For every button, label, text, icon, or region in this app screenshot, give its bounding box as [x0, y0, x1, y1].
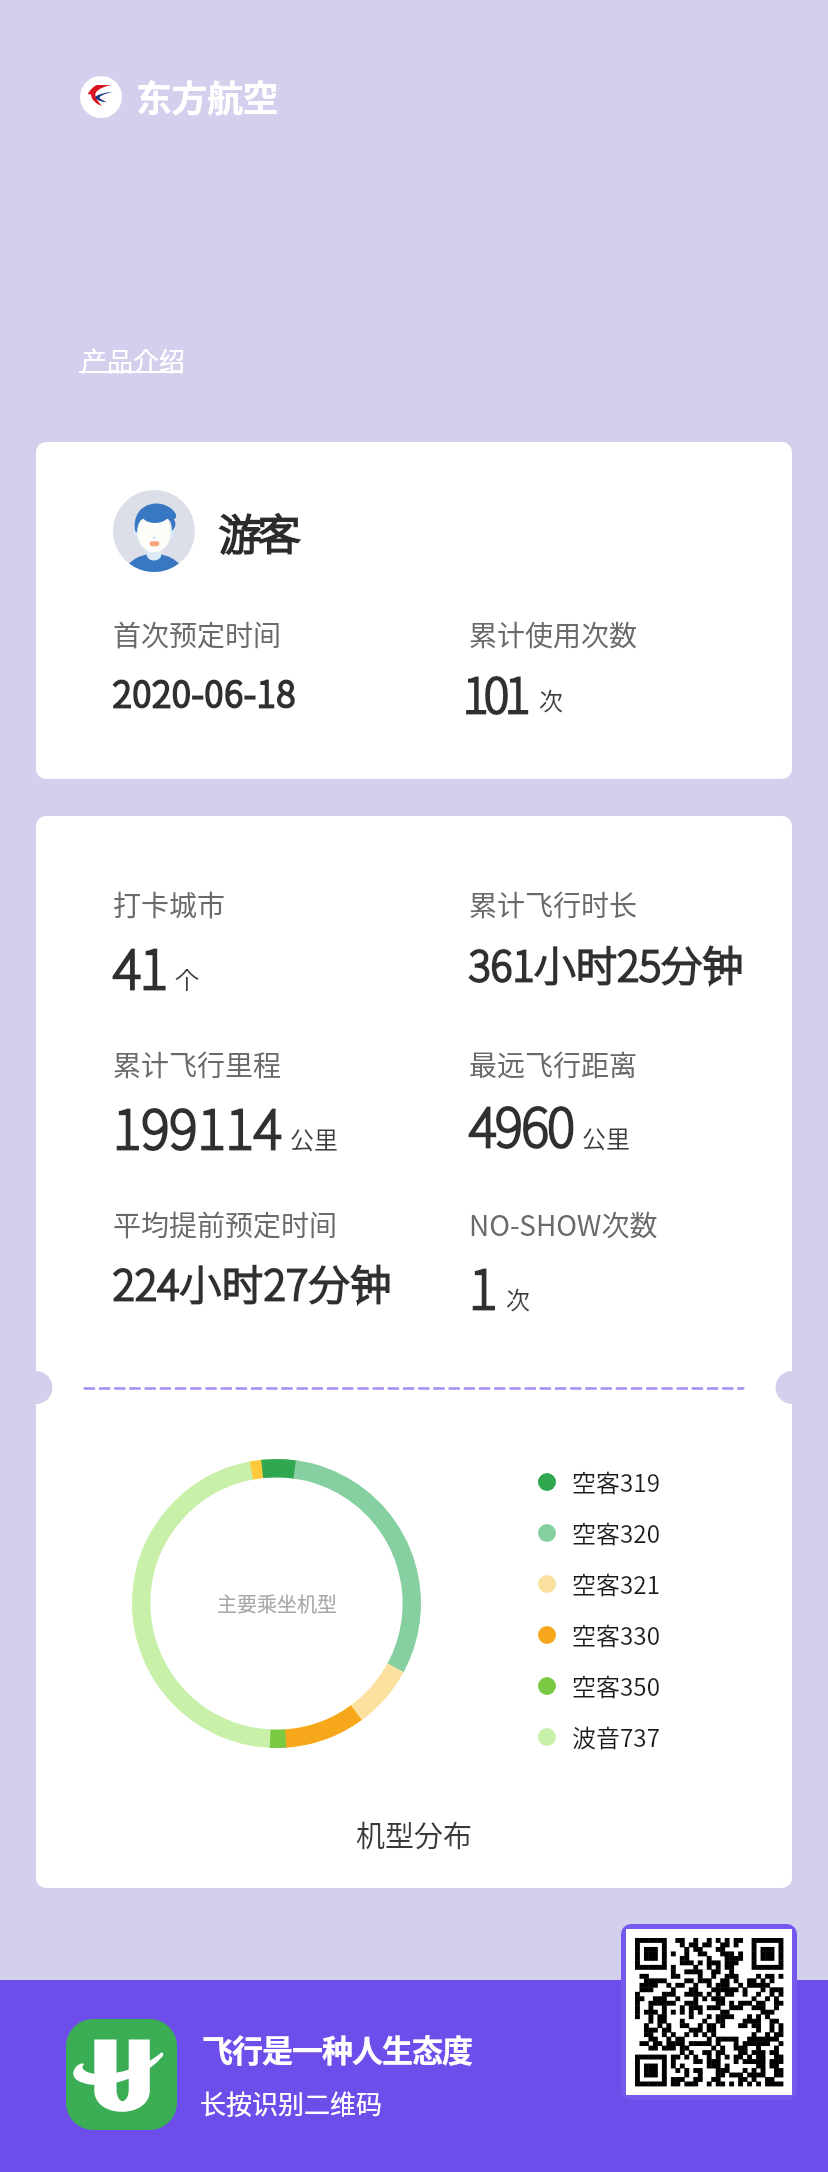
- staticText: 1: [469, 1246, 498, 1324]
- staticText: 41: [113, 926, 167, 1004]
- staticText: 首次预定时间: [113, 614, 282, 655]
- staticText: 机型分布: [356, 1813, 473, 1855]
- staticText: 平均提前预定时间: [113, 1204, 338, 1245]
- button[interactable]: 游客: [36, 442, 792, 779]
- staticText: 2020-06-18: [113, 666, 297, 717]
- staticText: 累计使用次数: [469, 614, 638, 655]
- staticText: 空客319: [572, 1464, 660, 1499]
- staticText: 2020-06-18: [113, 666, 297, 717]
- staticText: 公里: [582, 1120, 630, 1155]
- staticText: NO-SHOW次数: [469, 1204, 658, 1245]
- staticText: 游客: [219, 501, 298, 562]
- staticText: 主要乘坐机型: [217, 1589, 337, 1618]
- staticText: 224小时27分钟: [113, 1252, 393, 1311]
- staticText: 1: [469, 1246, 498, 1324]
- staticText: 空客330: [572, 1617, 660, 1652]
- button[interactable]: App icon: [66, 2019, 177, 2130]
- staticText: 361小时25分钟: [469, 933, 745, 992]
- staticText: 空客350: [572, 1668, 660, 1703]
- staticText: 4960: [469, 1086, 574, 1163]
- staticText: 公里: [290, 1121, 338, 1156]
- staticText: 游客: [219, 501, 298, 562]
- staticText: 4960: [469, 1086, 574, 1163]
- staticText: 打卡城市: [113, 884, 226, 925]
- button[interactable]: QR code: [626, 1929, 792, 2095]
- staticText: 101: [463, 657, 527, 727]
- button[interactable]: 产品介绍: [79, 341, 184, 379]
- staticText: 波音737: [572, 1719, 660, 1754]
- staticText: 最远飞行距离: [469, 1044, 638, 1085]
- staticText: 101: [463, 657, 527, 727]
- staticText: 长按识别二维码: [200, 2084, 383, 2122]
- staticText: 224小时27分钟: [113, 1252, 393, 1311]
- staticText: 个: [175, 961, 199, 996]
- staticText: 199114: [113, 1086, 282, 1164]
- staticText: 产品介绍: [81, 341, 186, 379]
- staticText: 东方航空: [136, 70, 279, 122]
- staticText: 空客321: [572, 1566, 660, 1601]
- staticText: 飞行是一种人生态度: [202, 2026, 472, 2071]
- staticText: 41: [113, 926, 167, 1004]
- staticText: 空客320: [572, 1515, 660, 1550]
- staticText: 361小时25分钟: [469, 933, 745, 992]
- staticText: 199114: [113, 1086, 282, 1164]
- staticText: 次: [539, 682, 563, 717]
- staticText: 累计飞行时长: [469, 884, 638, 925]
- staticText: 累计飞行里程: [113, 1044, 282, 1085]
- staticText: 次: [506, 1281, 530, 1316]
